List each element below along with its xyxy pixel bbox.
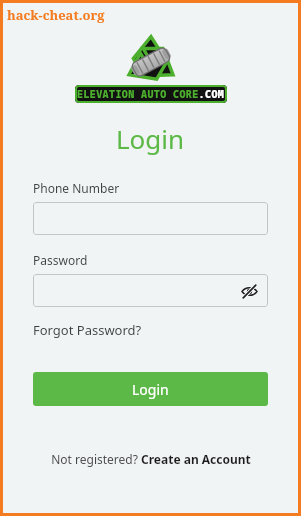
button[interactable]: Show password: [239, 281, 259, 301]
button[interactable]: Show password: [33, 274, 268, 307]
staticText: Password: [33, 252, 88, 268]
staticText: ELEVATION AUTO CORE.COM: [77, 87, 225, 101]
staticText: Not registered? Create an Account: [51, 451, 251, 467]
button[interactable]: Login: [33, 372, 268, 406]
staticText: Login: [132, 380, 169, 399]
staticText: Login: [116, 121, 185, 156]
button[interactable]: [33, 202, 268, 235]
button[interactable]: Not registered? Create an Account: [51, 451, 251, 467]
staticText: Forgot Password?: [33, 321, 142, 339]
staticText: Phone Number: [33, 180, 120, 196]
button[interactable]: Forgot Password?: [33, 321, 142, 339]
staticText: hack-cheat.org: [7, 6, 105, 24]
